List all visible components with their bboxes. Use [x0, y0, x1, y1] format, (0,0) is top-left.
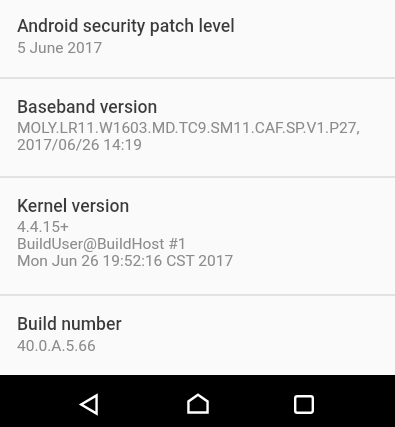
staticText: 4.4.15+ — [17, 218, 69, 236]
staticText: 5 June 2017 — [17, 39, 103, 57]
staticText: 2017/06/26 14:19 — [17, 136, 142, 154]
staticText: Build number — [17, 314, 122, 335]
staticText: Android security patch level — [17, 16, 235, 37]
staticText: Baseband version — [17, 97, 158, 118]
staticText: Mon Jun 26 19:52:16 CST 2017 — [17, 252, 234, 270]
button[interactable]: Recent apps — [280, 380, 328, 427]
button[interactable]: Baseband version — [0, 78, 395, 99]
staticText: 40.0.A.5.66 — [17, 337, 96, 355]
button[interactable]: Android security patch level — [0, 0, 395, 21]
staticText: BuildUser@BuildHost #1 — [17, 235, 187, 253]
staticText: Kernel version — [17, 196, 130, 217]
staticText: MOLY.LR11.W1603.MD.TC9.SM11.CAF.SP.V1.P2… — [17, 119, 360, 137]
button[interactable]: Build number — [0, 295, 395, 316]
button[interactable]: Home — [174, 379, 222, 427]
button[interactable]: Back — [64, 380, 112, 427]
button[interactable]: Kernel version — [0, 177, 395, 198]
